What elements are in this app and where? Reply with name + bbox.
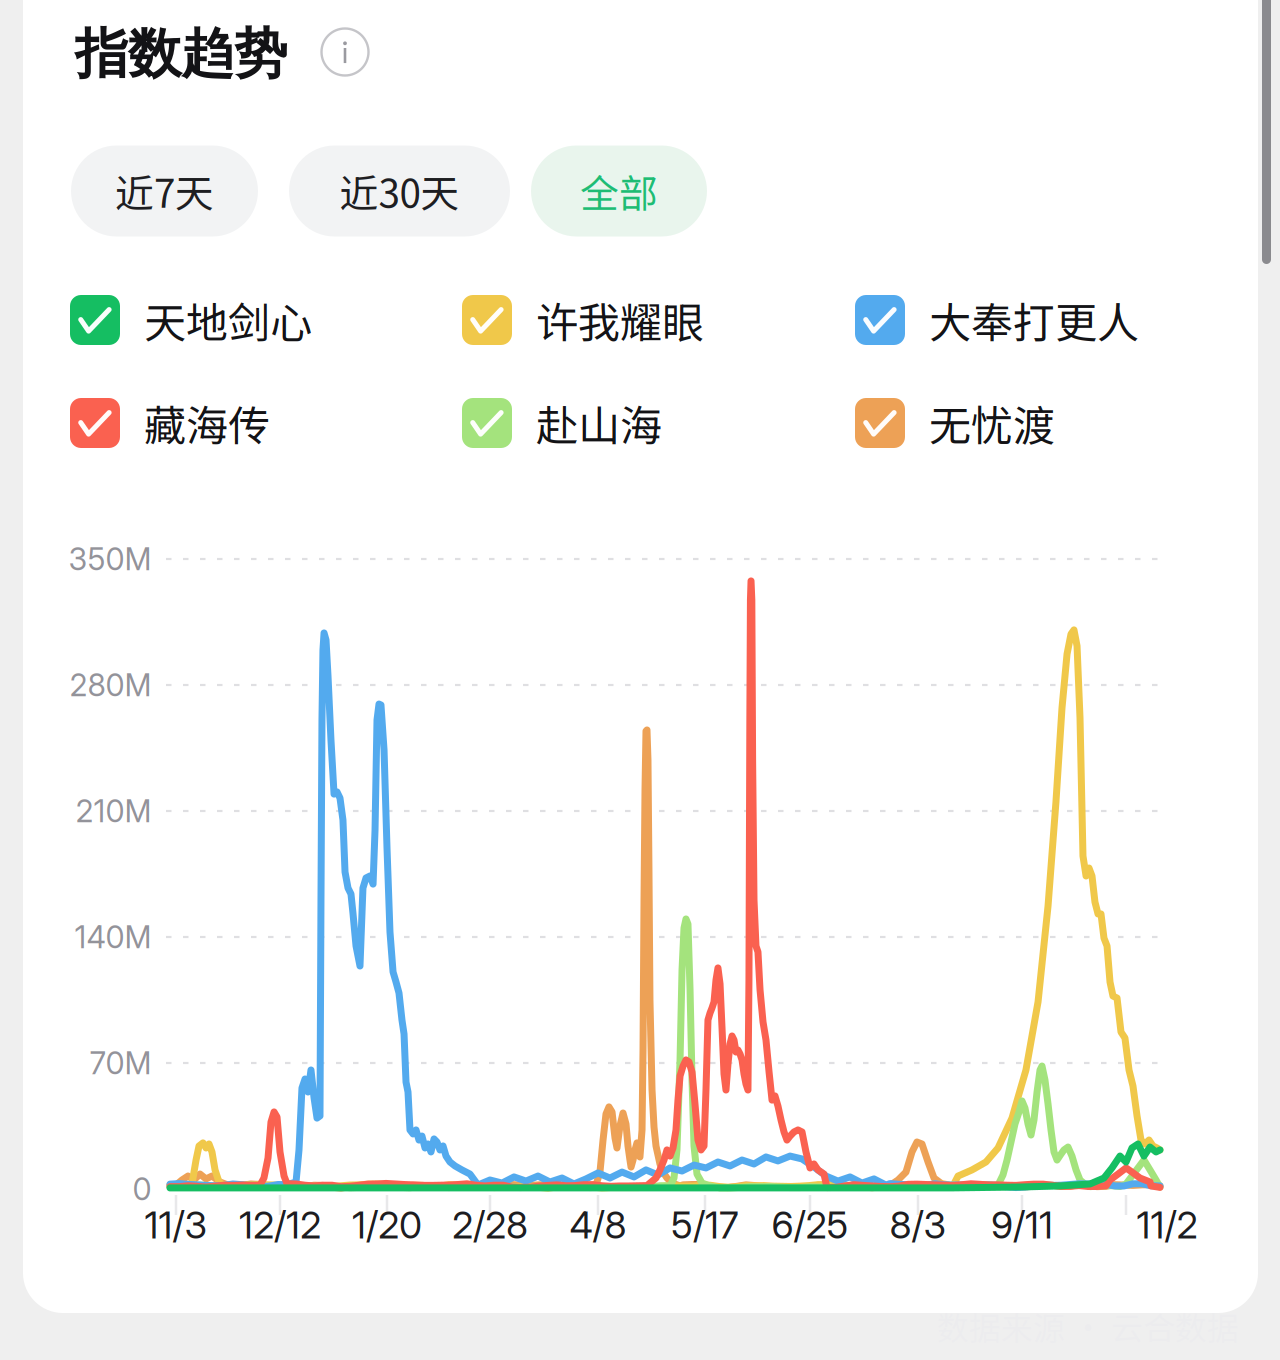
staticText: 9/11 xyxy=(991,1202,1053,1248)
staticText: 4/8 xyxy=(569,1202,626,1248)
staticText: 6/25 xyxy=(771,1202,848,1248)
staticText: 70M xyxy=(89,1044,151,1081)
button[interactable]: 天地剑心 xyxy=(70,291,462,349)
button[interactable]: 指数趋势说明 xyxy=(321,28,368,75)
staticText: 11/2 xyxy=(1136,1202,1197,1248)
staticText: 大奉打更人 xyxy=(929,290,1139,350)
staticText: 赴山海 xyxy=(536,393,662,453)
staticText: 无忧渡 xyxy=(929,393,1055,453)
staticText: 近7天 xyxy=(115,163,214,219)
staticText: 8/3 xyxy=(889,1202,946,1248)
button[interactable]: 藏海传 xyxy=(70,394,462,452)
button[interactable]: 近30天 xyxy=(289,145,510,236)
button[interactable]: 全部 xyxy=(531,145,707,236)
staticText: 5/17 xyxy=(671,1202,739,1248)
button[interactable]: 大奉打更人 xyxy=(855,291,1247,349)
staticText: 1/20 xyxy=(352,1202,422,1248)
button[interactable]: 无忧渡 xyxy=(855,394,1247,452)
staticText: 11/3 xyxy=(144,1202,207,1248)
staticText: 12/12 xyxy=(239,1202,321,1248)
staticText: 藏海传 xyxy=(144,393,270,453)
staticText: 许我耀眼 xyxy=(536,290,704,350)
staticText: 210M xyxy=(75,792,151,829)
staticText: 全部 xyxy=(580,163,658,219)
staticText: 2/28 xyxy=(452,1202,528,1248)
button[interactable]: 近7天 xyxy=(71,145,258,236)
staticText: 350M xyxy=(68,540,151,577)
staticText: 数据来源 · 云合数据 xyxy=(937,1303,1239,1349)
staticText: 0 xyxy=(132,1170,151,1207)
staticText: 指数趋势 xyxy=(75,20,287,88)
staticText: 近30天 xyxy=(339,163,459,219)
button[interactable]: 许我耀眼 xyxy=(462,291,854,349)
staticText: 280M xyxy=(69,666,151,703)
button[interactable]: 赴山海 xyxy=(462,394,854,452)
staticText: 天地剑心 xyxy=(144,290,312,350)
staticText: 140M xyxy=(74,918,151,955)
